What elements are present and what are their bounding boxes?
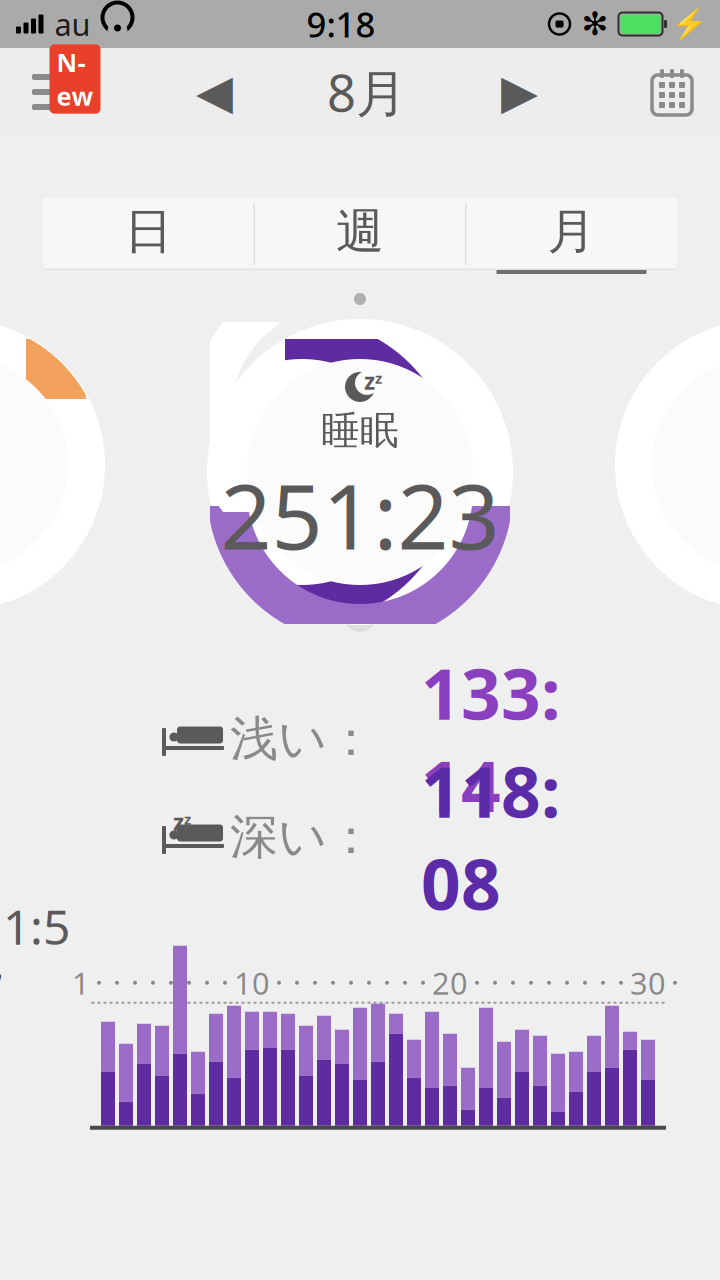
button[interactable]: 週 — [255, 198, 465, 270]
staticText: 10 — [234, 962, 270, 1003]
staticText: 週 — [336, 202, 384, 261]
staticText: 11:57 — [0, 894, 70, 1022]
staticText: au — [54, 4, 90, 44]
staticText: ◀ — [196, 65, 233, 119]
staticText: 9:18 — [306, 1, 375, 47]
staticText: ⚡ — [671, 7, 708, 41]
staticText: New — [56, 45, 93, 113]
staticText: 日 — [124, 202, 172, 261]
staticText: 浅い： — [230, 709, 375, 768]
button[interactable]: Previous month — [176, 60, 252, 124]
staticText: 睡眠 — [321, 407, 399, 454]
button[interactable]: Next month — [481, 60, 557, 124]
staticText: zᶻ — [364, 366, 382, 396]
staticText: 深い： — [230, 807, 375, 866]
staticText: 133:14 — [421, 647, 560, 831]
button[interactable]: Menu, New — [6, 60, 102, 124]
staticText: 1 — [72, 962, 90, 1003]
staticText: 251:23 — [220, 455, 499, 574]
staticText: 20 — [432, 962, 468, 1003]
staticText: 118:08 — [421, 745, 560, 929]
staticText: zᶻ — [173, 807, 191, 837]
staticText: 月 — [547, 202, 595, 261]
staticText: 8月 — [327, 58, 407, 126]
staticText: ▶ — [501, 65, 538, 119]
button[interactable]: Calendar — [632, 60, 712, 124]
staticText: ✻ — [581, 6, 608, 42]
button[interactable]: 月 — [466, 198, 676, 270]
button[interactable]: 日 — [43, 198, 253, 270]
staticText: 30 — [630, 962, 666, 1003]
